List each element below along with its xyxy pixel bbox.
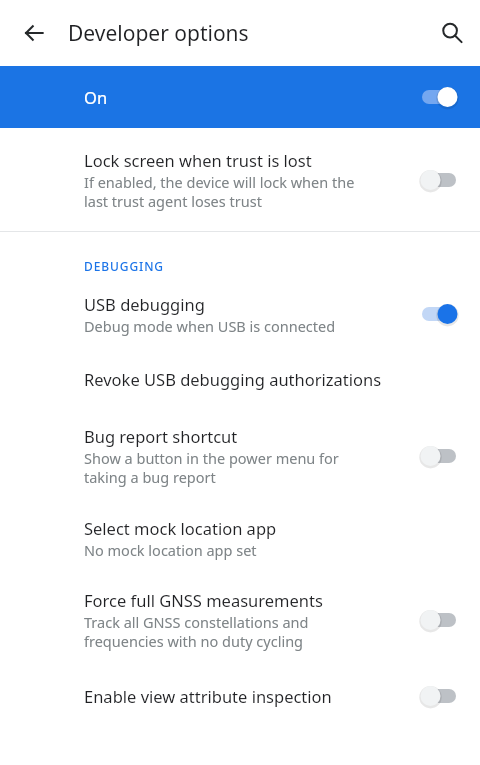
staticText: No mock location app set — [84, 540, 257, 560]
staticText: Developer options — [68, 19, 428, 48]
staticText: DEBUGGING — [84, 258, 164, 274]
staticText: Enable view attribute inspection — [84, 685, 332, 707]
staticText: If enabled, the device will lock when th… — [84, 172, 355, 212]
button[interactable]: Force full GNSS measurements toggle — [412, 601, 466, 639]
button[interactable]: USB debugging — [0, 280, 480, 348]
button[interactable]: Enable view attribute inspection — [0, 666, 480, 726]
button[interactable]: Revoke USB debugging authorizations — [0, 348, 480, 410]
staticText: Debug mode when USB is connected — [84, 316, 336, 336]
staticText: Show a button in the power menu for taki… — [84, 448, 339, 488]
button[interactable]: Search — [428, 9, 476, 57]
button[interactable]: Lock screen when trust is lost toggle — [412, 161, 466, 199]
button[interactable]: Force full GNSS measurements — [0, 574, 480, 666]
staticText: On — [84, 86, 412, 108]
button[interactable]: Enable view attribute inspection toggle — [412, 677, 466, 715]
staticText: Force full GNSS measurements — [84, 589, 323, 611]
button[interactable]: On — [0, 66, 480, 128]
button[interactable]: Back — [10, 9, 58, 57]
button[interactable]: Bug report shortcut toggle — [412, 437, 466, 475]
staticText: Bug report shortcut — [84, 425, 238, 447]
staticText: Revoke USB debugging authorizations — [84, 368, 382, 390]
button[interactable]: Select mock location app — [0, 502, 480, 574]
button[interactable]: Lock screen when trust is lost — [0, 136, 480, 224]
staticText: Lock screen when trust is lost — [84, 149, 312, 171]
button[interactable]: Developer options master toggle — [412, 78, 466, 116]
staticText: USB debugging — [84, 293, 205, 315]
button[interactable]: Bug report shortcut — [0, 410, 480, 502]
staticText: Select mock location app — [84, 517, 277, 539]
staticText: Track all GNSS constellations and freque… — [84, 612, 309, 652]
button[interactable]: USB debugging toggle — [412, 295, 466, 333]
